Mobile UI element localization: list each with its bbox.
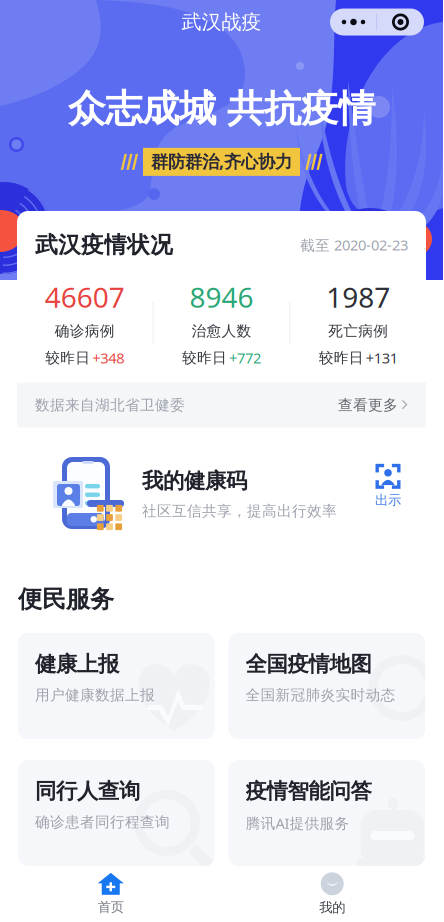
button[interactable]: 首页 [0, 866, 221, 922]
staticText: 我的 [319, 899, 345, 916]
staticText: 便民服务 [18, 584, 114, 614]
staticText: 社区互信共享，提高出行效率 [142, 502, 337, 520]
staticText: +348 [92, 348, 124, 367]
staticText: 腾讯AI提供服务 [245, 813, 349, 833]
staticText: 查看更多 [338, 396, 398, 414]
staticText: 全国疫情地图 [245, 651, 371, 677]
staticText: 治愈人数 [191, 322, 251, 340]
staticText: 1987 [326, 278, 390, 315]
button[interactable]: 我的健康码 [17, 427, 426, 544]
staticText: 武汉疫情状况 [35, 231, 173, 259]
button[interactable]: 我的 [221, 865, 443, 922]
staticText: 数据来自湖北省卫健委 [35, 396, 185, 414]
staticText: 疫情智能问答 [245, 778, 371, 804]
staticText: 用户健康数据上报 [35, 686, 155, 704]
button[interactable]: 疫情智能问答 [228, 760, 425, 866]
button[interactable]: 健康上报 [18, 633, 214, 739]
button[interactable]: 同行人查询 [18, 760, 214, 866]
staticText: 我的健康码 [142, 468, 247, 494]
button[interactable]: 数据来自湖北省卫健委 [17, 382, 426, 427]
staticText: 武汉战疫 [181, 10, 261, 34]
staticText: 健康上报 [35, 651, 119, 677]
staticText: 首页 [98, 899, 124, 915]
staticText: 确诊病例 [55, 322, 115, 340]
staticText: 众志成城 共抗疫情 [68, 86, 375, 132]
button[interactable]: 全国疫情地图 [228, 633, 425, 739]
staticText: 确诊患者同行程查询 [35, 813, 170, 831]
staticText: 截至 2020-02-23 [300, 235, 408, 255]
button[interactable]: More options [330, 8, 424, 35]
staticText: 出示 [375, 492, 401, 508]
staticText: +772 [229, 348, 261, 367]
staticText: 8946 [189, 278, 253, 315]
staticText: 较昨日 [45, 349, 90, 367]
staticText: 较昨日 [319, 349, 364, 367]
staticText: 同行人查询 [35, 778, 140, 804]
staticText: 46607 [45, 278, 125, 315]
staticText: 全国新冠肺炎实时动态 [245, 686, 395, 704]
staticText: +131 [366, 348, 398, 367]
staticText: 群防群治,齐心协力 [151, 150, 292, 173]
staticText: 死亡病例 [328, 322, 388, 340]
staticText: 较昨日 [182, 349, 227, 367]
